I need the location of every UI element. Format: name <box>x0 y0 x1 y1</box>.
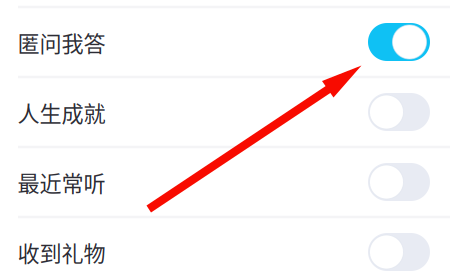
button[interactable]: 最近常听 <box>0 147 450 217</box>
button[interactable]: 人生成就 <box>0 77 450 147</box>
button[interactable]: Switch on <box>368 23 430 61</box>
staticText: 最近常听 <box>17 166 105 198</box>
button[interactable]: 匿问我答 <box>0 7 450 77</box>
staticText: 匿问我答 <box>17 26 105 58</box>
staticText: 人生成就 <box>17 96 105 128</box>
button[interactable]: Switch off <box>368 233 430 271</box>
button[interactable]: Switch off <box>368 93 430 131</box>
button[interactable]: 收到礼物 <box>0 217 450 279</box>
staticText: 收到礼物 <box>17 236 105 268</box>
button[interactable]: Switch off <box>368 163 430 201</box>
